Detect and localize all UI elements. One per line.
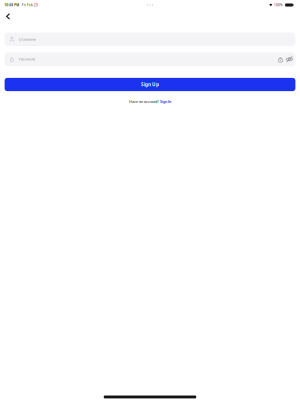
button[interactable]: Show password xyxy=(283,52,295,66)
button[interactable]: Sign Up xyxy=(5,78,295,91)
staticText: Have an account? xyxy=(129,99,159,104)
staticText: Password xyxy=(19,57,35,61)
staticText: 100% xyxy=(274,3,283,7)
staticText: Sign Up xyxy=(141,81,159,88)
staticText: Username xyxy=(19,37,36,42)
button[interactable]: Saved passwords xyxy=(278,52,283,66)
staticText: Sign In xyxy=(160,99,171,104)
button[interactable]: Back xyxy=(0,12,16,24)
button[interactable]: Have an account? xyxy=(126,97,174,107)
staticText: Fri Feb 23 xyxy=(22,3,38,7)
staticText: 10:08 PM xyxy=(4,3,19,7)
